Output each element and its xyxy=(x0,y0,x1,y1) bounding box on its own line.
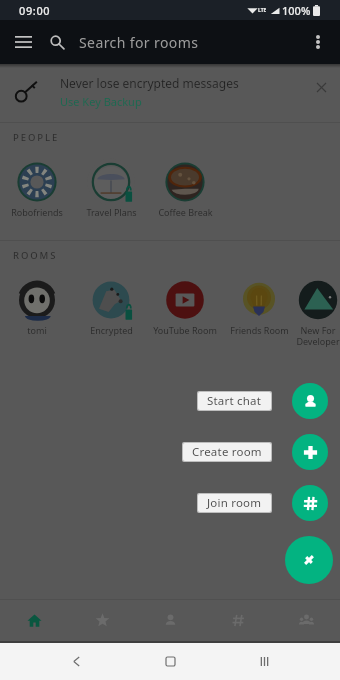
button[interactable]: Recents xyxy=(254,651,274,671)
staticText: PEOPLE xyxy=(13,131,60,144)
staticText: 100% xyxy=(282,3,311,18)
button[interactable]: YouTube Room xyxy=(148,270,222,358)
button[interactable]: Coffee Break xyxy=(148,152,222,240)
staticText: Travel Plans xyxy=(86,206,137,218)
staticText: tomi xyxy=(27,324,47,336)
button[interactable]: Close menu xyxy=(285,536,333,584)
button[interactable]: Dismiss xyxy=(310,76,332,98)
button[interactable]: Create room xyxy=(292,434,328,470)
button[interactable]: Home xyxy=(160,651,180,671)
staticText: Friends Room xyxy=(230,324,289,336)
button[interactable]: Communities xyxy=(272,599,340,641)
button[interactable]: Back xyxy=(66,651,86,671)
staticText: Never lose encrypted messages xyxy=(60,75,239,91)
staticText: New For Developers xyxy=(296,324,340,348)
button[interactable]: Join room xyxy=(292,485,328,521)
staticText: 09:00 xyxy=(19,3,51,18)
button[interactable]: Create room xyxy=(183,443,271,461)
staticText: Robofriends xyxy=(11,206,63,218)
staticText: LTE xyxy=(258,7,267,14)
staticText: Use Key Backup xyxy=(60,94,142,109)
staticText: Join room xyxy=(207,495,262,511)
staticText: Create room xyxy=(192,444,262,460)
button[interactable]: Open navigation drawer xyxy=(7,26,39,58)
staticText: Encrypted xyxy=(90,324,133,336)
button[interactable]: Friends Room xyxy=(222,270,296,358)
button[interactable]: New For Developers xyxy=(296,270,340,358)
button[interactable]: Robofriends xyxy=(0,152,74,240)
button[interactable]: tomi xyxy=(0,270,74,358)
button[interactable]: Never lose encrypted messages xyxy=(0,64,340,122)
button[interactable]: More options xyxy=(302,26,334,58)
button[interactable]: Encrypted xyxy=(74,270,148,358)
button[interactable]: Travel Plans xyxy=(74,152,148,240)
staticText: ROOMS xyxy=(13,249,58,262)
button[interactable]: Start chat xyxy=(292,383,328,419)
staticText: Search for rooms xyxy=(79,33,199,52)
button[interactable]: Start chat xyxy=(198,392,271,410)
staticText: Coffee Break xyxy=(158,206,213,218)
staticText: Start chat xyxy=(207,393,262,409)
staticText: YouTube Room xyxy=(153,324,217,336)
button[interactable]: Join room xyxy=(198,494,271,512)
button[interactable]: Home xyxy=(0,599,68,641)
